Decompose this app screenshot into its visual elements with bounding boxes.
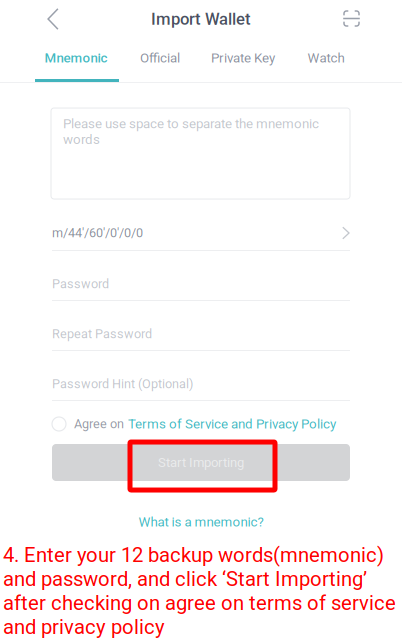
button[interactable]: Watch	[290, 48, 362, 68]
staticText: Watch	[307, 50, 344, 66]
staticText: Private Key	[211, 50, 275, 66]
staticText: Official	[140, 50, 180, 66]
staticText: Mnemonic	[44, 50, 107, 66]
button[interactable]: What is a mnemonic?	[101, 512, 301, 532]
button[interactable]: m/44'/60'/0'/0/0	[52, 218, 350, 248]
staticText: Repeat Password	[52, 327, 152, 341]
button[interactable]: Private Key	[203, 48, 283, 68]
button[interactable]: Agree on	[52, 412, 350, 436]
button[interactable]: Official	[124, 48, 196, 68]
button[interactable]: Back	[33, 8, 73, 30]
staticText: and privacy policy	[3, 615, 165, 639]
staticText: Password Hint (Optional)	[52, 377, 193, 391]
staticText: Please use space to separate the mnemoni…	[63, 116, 319, 147]
button[interactable]: Mnemonic	[36, 48, 116, 68]
button[interactable]: Start Importing	[52, 444, 350, 481]
staticText: What is a mnemonic?	[138, 514, 263, 530]
staticText: after checking on agree on terms of serv…	[3, 591, 396, 615]
staticText: Terms of Service and Privacy Policy	[128, 416, 336, 432]
button[interactable]: Scan QR code	[336, 7, 368, 31]
staticText: and password, and click ‘Start Importing…	[3, 567, 367, 591]
staticText: Import Wallet	[151, 9, 251, 29]
staticText: Password	[52, 277, 109, 291]
staticText: Agree on	[74, 417, 124, 431]
staticText: m/44'/60'/0'/0/0	[52, 226, 143, 240]
staticText: Start Importing	[158, 455, 244, 470]
staticText: 4. Enter your 12 backup words(mnemonic)	[3, 543, 384, 567]
